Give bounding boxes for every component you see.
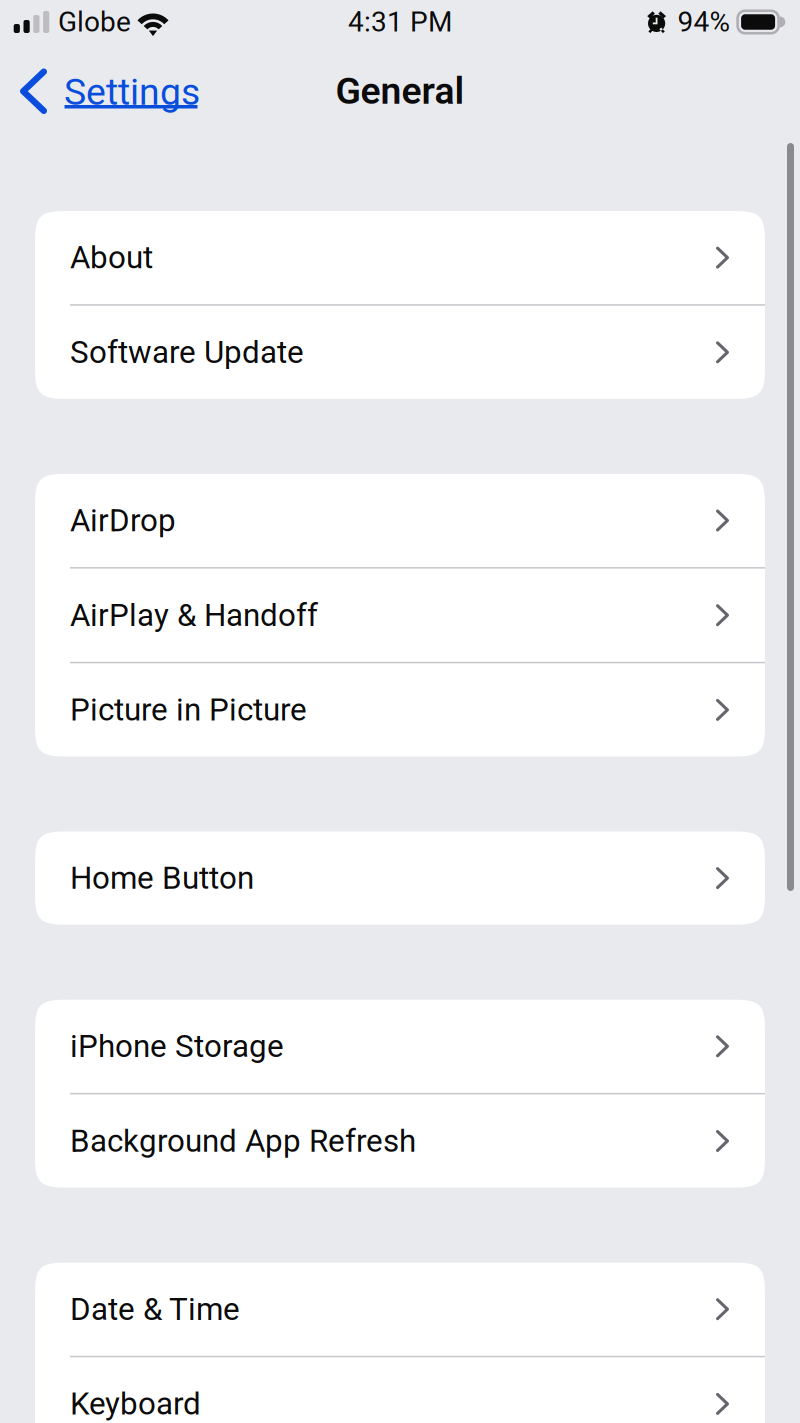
button[interactable]: Keyboard: [35, 1357, 765, 1423]
button[interactable]: Settings: [0, 44, 210, 126]
staticText: Settings: [64, 70, 200, 114]
button[interactable]: Background App Refresh: [35, 1094, 765, 1188]
staticText: Keyboard: [70, 1385, 201, 1422]
staticText: Picture in Picture: [70, 691, 307, 728]
button[interactable]: Software Update: [35, 306, 765, 399]
staticText: 4:31 PM: [348, 6, 452, 38]
staticText: iPhone Storage: [70, 1028, 284, 1065]
staticText: AirDrop: [70, 502, 176, 539]
staticText: AirPlay & Handoff: [70, 597, 318, 633]
button[interactable]: iPhone Storage: [35, 1000, 765, 1093]
staticText: About: [70, 239, 153, 276]
staticText: Date & Time: [70, 1291, 240, 1327]
staticText: Globe: [58, 6, 131, 38]
staticText: Home Button: [70, 860, 254, 896]
staticText: Software Update: [70, 334, 304, 371]
button[interactable]: About: [35, 211, 765, 304]
staticText: Background App Refresh: [70, 1123, 416, 1159]
button[interactable]: Home Button: [35, 831, 765, 925]
button[interactable]: Date & Time: [35, 1263, 765, 1356]
button[interactable]: AirPlay & Handoff: [35, 569, 765, 662]
staticText: 94%: [678, 6, 731, 38]
button[interactable]: Picture in Picture: [35, 663, 765, 756]
button[interactable]: AirDrop: [35, 474, 765, 567]
staticText: General: [335, 69, 464, 113]
